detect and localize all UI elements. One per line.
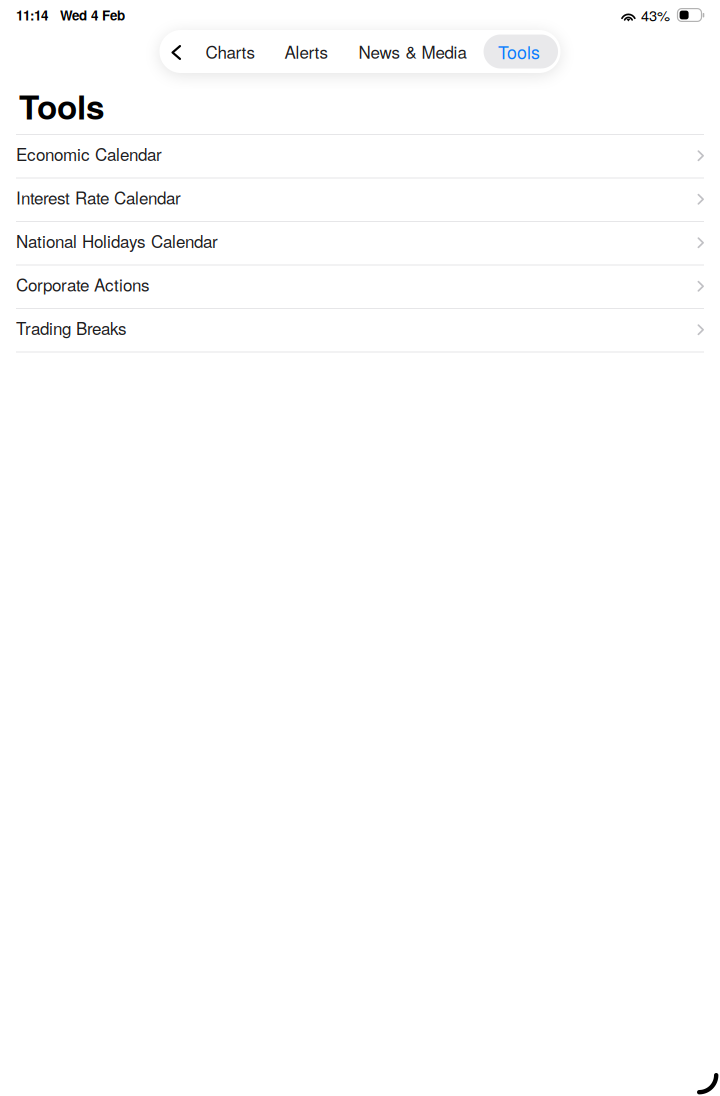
button[interactable]: Corporate Actions (0, 265, 720, 309)
staticText: Charts (205, 39, 255, 64)
button[interactable]: Back (159, 30, 194, 73)
staticText: Alerts (284, 39, 328, 64)
button[interactable]: Tools (484, 34, 558, 68)
staticText: Wed 4 Feb (60, 5, 125, 25)
button[interactable]: Trading Breaks (0, 309, 720, 352)
staticText: 43% (641, 4, 670, 26)
staticText: Interest Rate Calendar (16, 185, 181, 209)
staticText: Corporate Actions (16, 272, 150, 296)
button[interactable]: Charts (194, 34, 270, 68)
button[interactable]: Alerts (270, 34, 344, 68)
staticText: National Holidays Calendar (16, 229, 218, 253)
staticText: Tools (498, 39, 540, 64)
staticText: Trading Breaks (16, 316, 127, 340)
button[interactable]: National Holidays Calendar (0, 222, 720, 265)
button[interactable]: Economic Calendar (0, 135, 720, 178)
staticText: News & Media (358, 39, 466, 64)
button[interactable]: Interest Rate Calendar (0, 178, 720, 222)
staticText: Economic Calendar (16, 142, 162, 166)
staticText: 11:14 (16, 5, 48, 25)
button[interactable]: News & Media (344, 34, 483, 68)
staticText: Tools (19, 82, 105, 130)
